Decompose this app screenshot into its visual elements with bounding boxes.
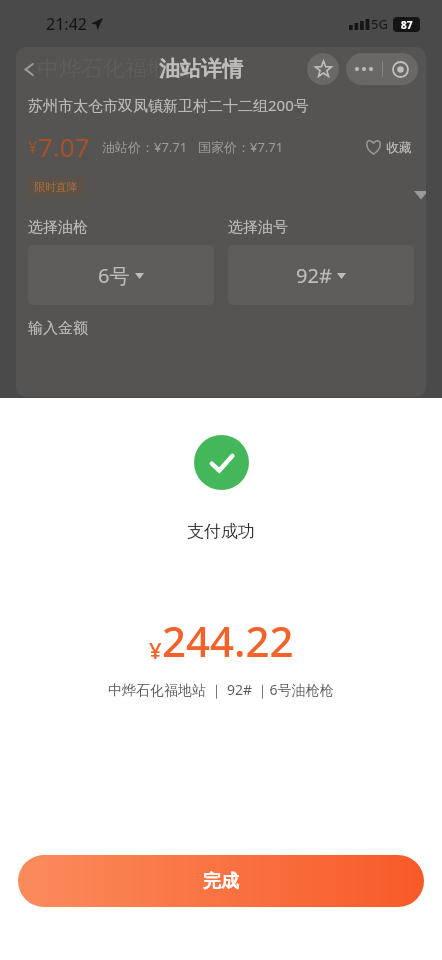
staticText: 限时直降 [34,180,78,194]
staticText: 国家价：¥7.71 [198,138,284,156]
staticText: 6号 [98,262,130,289]
staticText: ¥ [149,635,162,665]
button[interactable]: Favorite [307,53,339,85]
button[interactable]: 6号 [28,245,214,305]
staticText: 油站价：¥7.71 [102,138,188,156]
staticText: ¥ [28,136,38,158]
staticText: 支付成功 [187,521,255,542]
button[interactable]: 92# [228,245,414,305]
staticText: 87 [401,18,413,32]
staticText: 7.07 [38,129,90,164]
staticText: 收藏 [386,139,412,155]
staticText: 中烨石化福地站 ｜ 92# ｜6号油枪枪 [108,680,334,699]
staticText: 244.22 [162,612,294,669]
staticText: 5G [371,15,388,33]
staticText: 油站详情 [159,56,243,82]
button[interactable]: Close [383,53,418,85]
staticText: 完成 [203,870,239,893]
button[interactable]: 完成 [18,855,424,907]
staticText: 92# [296,262,332,289]
staticText: 选择油枪 [28,218,88,237]
staticText: 输入金额 [28,319,88,338]
staticText: 选择油号 [228,218,288,237]
staticText: 中烨石化福地站 [37,55,191,83]
staticText: 苏州市太仓市双凤镇新卫村二十二组200号 [28,95,309,115]
button[interactable]: More [346,53,382,85]
staticText: 21:42 [46,13,87,35]
